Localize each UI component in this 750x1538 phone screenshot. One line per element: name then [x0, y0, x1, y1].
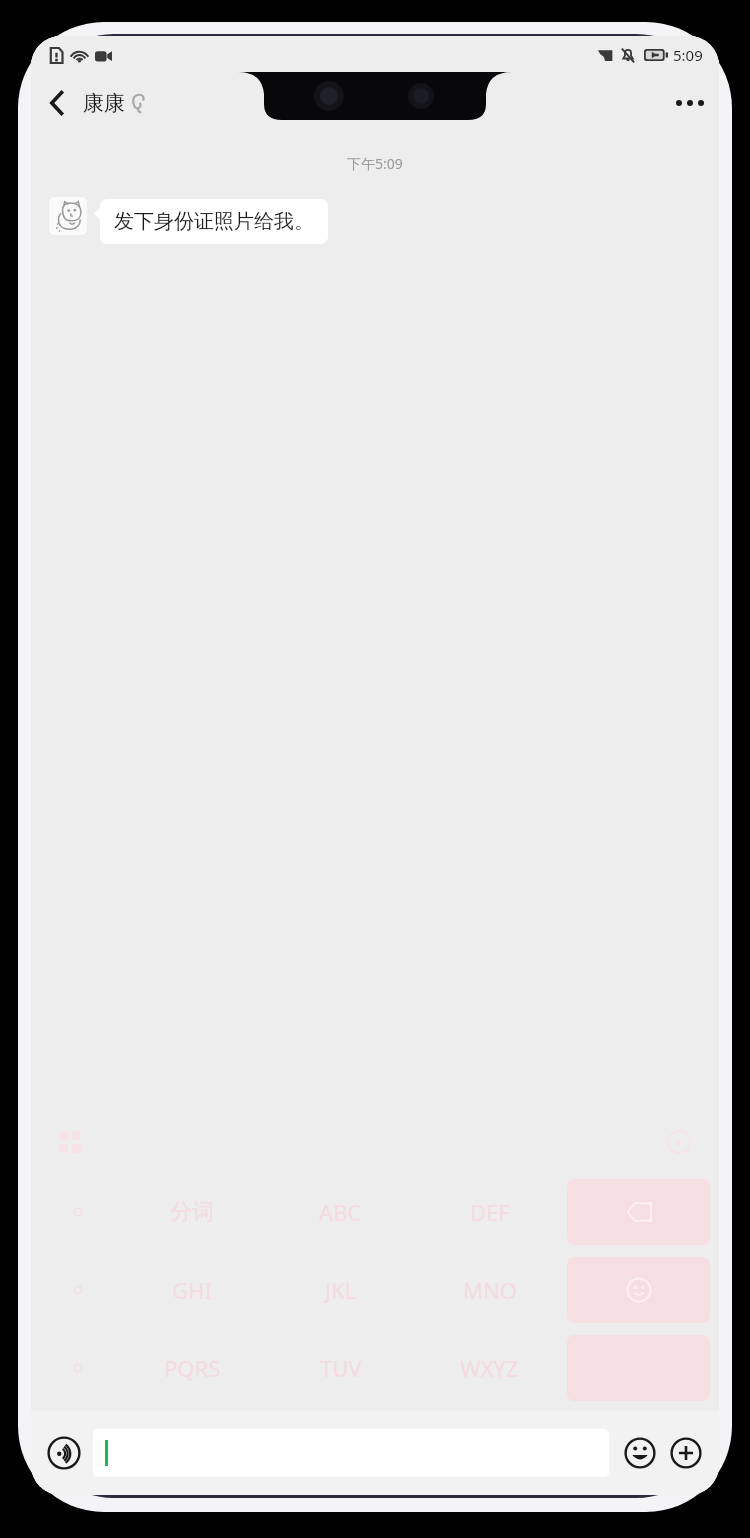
button[interactable]: Avatar [49, 197, 87, 235]
button[interactable]: 发下身份证照片给我。 [94, 199, 329, 244]
staticText: 康康 [83, 90, 125, 116]
staticText: WXYZ [460, 1353, 519, 1383]
staticText: 分词 [170, 1198, 214, 1226]
staticText: ABC [319, 1197, 362, 1227]
staticText: 5:09 [673, 45, 703, 65]
button[interactable]: More functions [667, 1434, 705, 1472]
staticText: 下午5:09 [347, 154, 403, 173]
staticText: JKL [325, 1275, 357, 1305]
staticText: MNO [463, 1275, 517, 1305]
staticText: PQRS [164, 1353, 221, 1383]
staticText: 发下身份证照片给我。 [114, 209, 314, 234]
button[interactable]: Back [31, 74, 83, 132]
staticText: TUV [320, 1353, 362, 1383]
staticText: GHI [172, 1275, 212, 1305]
button[interactable] [93, 1429, 609, 1477]
button[interactable]: Voice input [45, 1434, 83, 1472]
button[interactable]: More options [661, 74, 719, 132]
staticText: DEF [470, 1197, 510, 1227]
button[interactable]: Emoji [621, 1434, 659, 1472]
